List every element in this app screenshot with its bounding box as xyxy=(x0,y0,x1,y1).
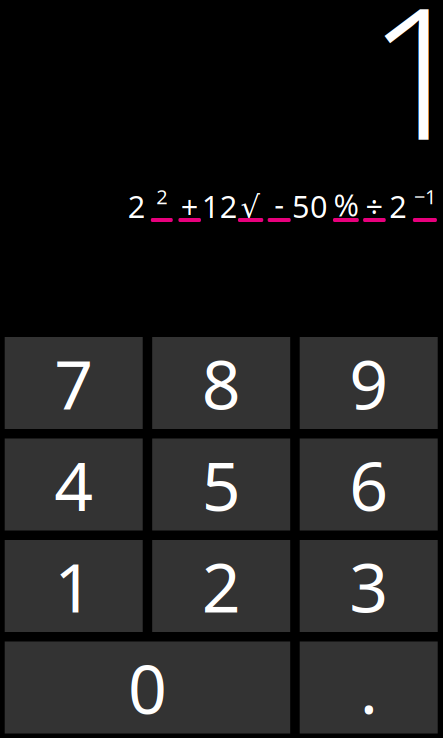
staticText: 5 xyxy=(202,439,241,530)
staticText: 6 xyxy=(349,439,388,530)
button[interactable]: 3 xyxy=(300,540,438,632)
button[interactable]: 0 xyxy=(5,641,290,733)
button[interactable]: percent xyxy=(333,180,359,220)
staticText: 0 xyxy=(128,642,167,733)
staticText: ÷ xyxy=(365,186,383,226)
staticText: . xyxy=(360,642,378,733)
button[interactable]: squared xyxy=(151,180,173,220)
button[interactable]: 4 xyxy=(5,438,143,530)
button[interactable]: to the power of minus one xyxy=(413,180,437,220)
staticText: 8 xyxy=(202,338,241,428)
button[interactable]: 2 xyxy=(152,540,290,632)
staticText: 9 xyxy=(349,338,388,428)
button[interactable]: 9 xyxy=(300,337,438,429)
staticText: 7 xyxy=(54,338,93,428)
button[interactable]: 6 xyxy=(300,438,438,530)
button[interactable]: 8 xyxy=(152,337,290,429)
staticText: 2 xyxy=(389,186,407,226)
button[interactable]: 7 xyxy=(5,337,143,429)
staticText: 50 xyxy=(292,186,328,226)
button[interactable]: divide xyxy=(363,180,386,220)
staticText: 3 xyxy=(349,541,388,631)
staticText: 2 xyxy=(202,541,241,631)
staticText: % xyxy=(333,184,358,225)
staticText: 1 xyxy=(54,541,93,631)
staticText: 4 xyxy=(54,439,93,530)
staticText: −1 xyxy=(414,183,436,210)
staticText: 2 xyxy=(128,186,146,226)
staticText: - xyxy=(274,183,284,224)
staticText: + xyxy=(181,186,199,226)
button[interactable]: plus xyxy=(178,180,201,220)
staticText: 1 xyxy=(367,0,443,190)
staticText: √ xyxy=(241,190,261,225)
button[interactable]: . xyxy=(300,641,438,733)
staticText: 12 xyxy=(202,186,238,226)
staticText: 2 xyxy=(156,183,167,210)
button[interactable]: 5 xyxy=(152,438,290,530)
button[interactable]: 1 xyxy=(5,540,143,632)
button[interactable]: square root xyxy=(238,180,263,220)
button[interactable]: minus xyxy=(268,180,291,220)
